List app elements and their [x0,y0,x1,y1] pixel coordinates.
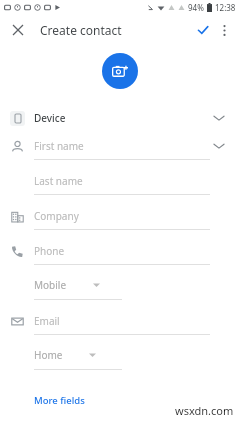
button[interactable]: Last name [0,168,240,203]
button[interactable]: Expand name fields [210,137,228,155]
button[interactable]: Mobile [0,273,240,308]
button[interactable]: More fields [34,392,85,409]
button[interactable]: Save [192,19,214,41]
button[interactable]: Change account [210,109,228,127]
staticText: Phone [34,244,65,258]
button[interactable]: Phone [0,238,240,273]
staticText: Device [34,111,66,125]
button[interactable]: Close [8,20,28,40]
staticText: Create contact [40,22,122,38]
staticText: Last name [34,174,83,188]
button[interactable]: More options [214,20,234,40]
staticText: 94% [188,2,204,13]
staticText: Mobile [34,278,67,292]
button[interactable]: Home [0,343,240,378]
button[interactable]: Company [0,203,240,238]
staticText: wsxdn.com [175,403,234,418]
button[interactable]: First name [0,133,240,168]
staticText: Company [34,209,79,223]
staticText: Email [34,314,60,328]
button[interactable]: Device [0,103,240,133]
button[interactable]: Email [0,308,240,343]
button[interactable]: Add photo [102,53,138,89]
staticText: First name [34,139,84,153]
staticText: Home [34,348,63,362]
staticText: More fields [34,394,85,407]
staticText: 12:38 [215,2,236,13]
